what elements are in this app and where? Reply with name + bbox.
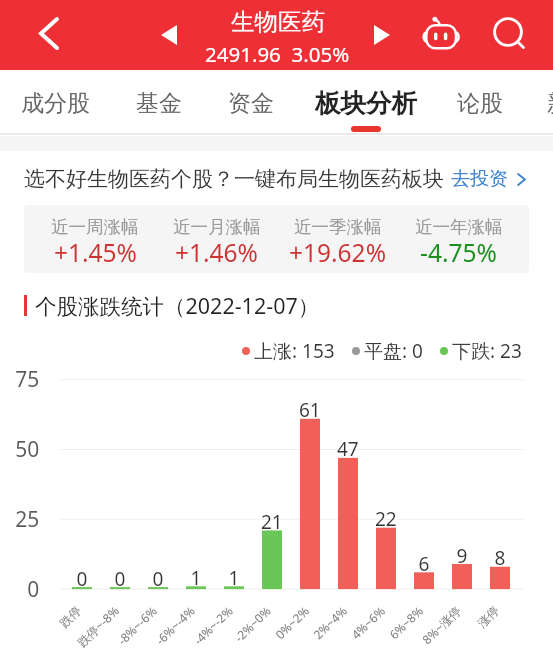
staticText: 生物医药 xyxy=(231,7,325,37)
staticText: 平盘: 0 xyxy=(364,338,423,364)
staticText: 个股涨跌统计（2022-12-07） xyxy=(35,291,320,320)
button[interactable]: Back xyxy=(27,11,71,55)
staticText: 论股 xyxy=(457,89,503,118)
button[interactable]: 成分股 xyxy=(21,70,90,133)
button[interactable]: Next sector xyxy=(363,16,401,54)
button[interactable]: AI assistant xyxy=(420,12,464,56)
staticText: 资金 xyxy=(228,89,274,118)
staticText: 去投资 xyxy=(451,167,508,191)
button[interactable]: 新 xyxy=(547,70,553,133)
staticText: 成分股 xyxy=(21,89,90,118)
staticText: +1.46% xyxy=(175,236,258,269)
staticText: +1.45% xyxy=(54,236,137,269)
button[interactable]: Previous sector xyxy=(150,16,188,54)
staticText: 近一年涨幅 xyxy=(415,216,503,238)
staticText: 基金 xyxy=(136,89,182,118)
staticText: 2491.96 3.05% xyxy=(205,40,350,68)
button[interactable]: 板块分析 xyxy=(315,70,417,133)
button[interactable]: 去投资 xyxy=(451,167,526,191)
staticText: 板块分析 xyxy=(315,87,417,119)
staticText: 近一季涨幅 xyxy=(294,216,382,238)
staticText: +19.62% xyxy=(289,236,386,269)
button[interactable]: 近一周涨幅 xyxy=(24,205,529,273)
staticText: 下跌: 23 xyxy=(452,338,522,364)
staticText: -4.75% xyxy=(420,236,497,269)
button[interactable]: 论股 xyxy=(457,70,503,133)
button[interactable]: 资金 xyxy=(228,70,274,133)
staticText: 选不好生物医药个股？一键布局生物医药板块 xyxy=(24,166,444,192)
staticText: 新 xyxy=(547,89,553,118)
button[interactable]: 基金 xyxy=(136,70,182,133)
button[interactable]: Search xyxy=(487,11,531,55)
staticText: 近一月涨幅 xyxy=(173,216,261,238)
staticText: 上涨: 153 xyxy=(254,338,335,364)
staticText: 近一周涨幅 xyxy=(51,216,139,238)
